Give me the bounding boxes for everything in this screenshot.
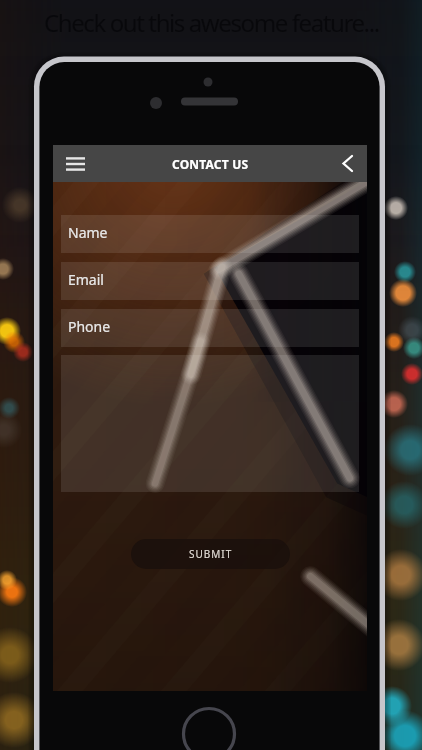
button[interactable]: SUBMIT	[131, 539, 290, 569]
staticText: Check out this awesome feature...	[44, 6, 379, 39]
staticText: SUBMIT	[189, 547, 233, 561]
button[interactable]: Menu	[53, 145, 97, 182]
staticText: Phone	[68, 317, 111, 336]
staticText: Email	[68, 270, 104, 289]
button[interactable]: Email	[61, 262, 359, 300]
button[interactable]: Back	[327, 145, 367, 182]
button[interactable]: Phone	[61, 309, 359, 347]
button[interactable]: Name	[61, 215, 359, 253]
staticText: CONTACT US	[172, 156, 249, 172]
button[interactable]	[61, 355, 359, 492]
staticText: Name	[68, 223, 108, 242]
